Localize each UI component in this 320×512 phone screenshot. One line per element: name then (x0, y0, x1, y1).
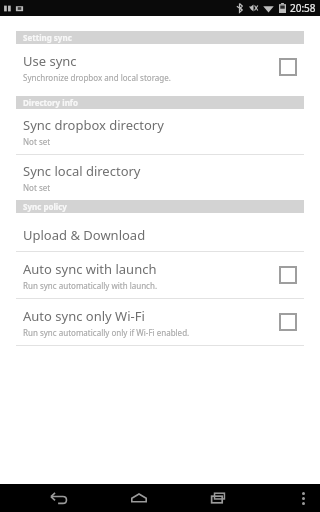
staticText: Auto sync only Wi-Fi (23, 307, 145, 325)
staticText: Upload & Download (23, 226, 146, 244)
staticText: Not set (23, 136, 51, 147)
staticText: Sync dropbox directory (23, 116, 164, 134)
staticText: Sync local directory (23, 162, 141, 180)
staticText: Synchronize dropbox and local storage. (23, 72, 171, 83)
staticText: Sync policy (23, 201, 67, 212)
button[interactable]: Home (119, 484, 159, 512)
button[interactable]: Upload & Download (0, 219, 320, 251)
staticText: Not set (23, 182, 51, 193)
staticText: Run sync automatically only if Wi-Fi ena… (23, 327, 190, 338)
button[interactable]: Use sync (0, 44, 320, 90)
staticText: 20:58 (290, 1, 316, 15)
button[interactable]: More options (290, 484, 316, 512)
button[interactable]: Recent apps (199, 484, 239, 512)
button[interactable]: Sync dropbox directory (0, 109, 320, 154)
button[interactable]: Auto sync with launch (272, 259, 304, 291)
button[interactable]: Auto sync only Wi-Fi (0, 299, 320, 345)
button[interactable]: Sync local directory (0, 155, 320, 200)
staticText: Run sync automatically with launch. (23, 280, 158, 291)
button[interactable]: Back (39, 484, 79, 512)
button[interactable]: Auto sync only Wi-Fi (272, 306, 304, 338)
staticText: Setting sync (23, 32, 72, 43)
button[interactable]: Use sync (272, 51, 304, 83)
button[interactable]: Auto sync with launch (0, 252, 320, 298)
staticText: Auto sync with launch (23, 260, 157, 278)
staticText: Directory info (23, 97, 78, 108)
staticText: Use sync (23, 52, 77, 70)
